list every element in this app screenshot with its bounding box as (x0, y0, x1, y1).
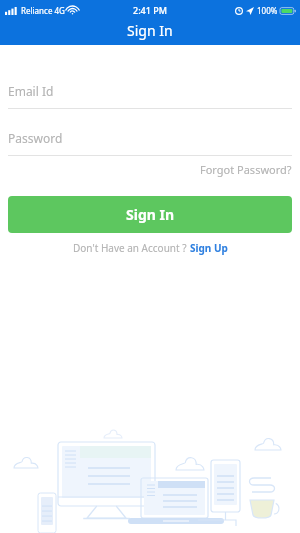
other: Alarm (235, 7, 243, 15)
staticText: Sign In (127, 21, 173, 40)
button[interactable]: Sign In (8, 196, 292, 233)
other: Location (246, 7, 254, 15)
staticText: Email Id (8, 83, 54, 99)
other: Battery (280, 7, 296, 15)
other: Wi-Fi (68, 6, 77, 15)
staticText: Password (8, 130, 63, 146)
button[interactable]: Sign Up (190, 241, 228, 255)
button[interactable]: Password (8, 130, 292, 156)
staticText: Reliance 4G (21, 5, 65, 16)
button[interactable]: Forgot Password? (200, 159, 292, 180)
staticText: 2:41 PM (133, 4, 167, 16)
other: Signal strength (5, 7, 18, 15)
staticText: Don't Have an Account ? (73, 241, 190, 255)
button[interactable]: Email Id (8, 83, 292, 109)
staticText: 100% (257, 5, 278, 16)
staticText: Sign In (126, 205, 175, 224)
